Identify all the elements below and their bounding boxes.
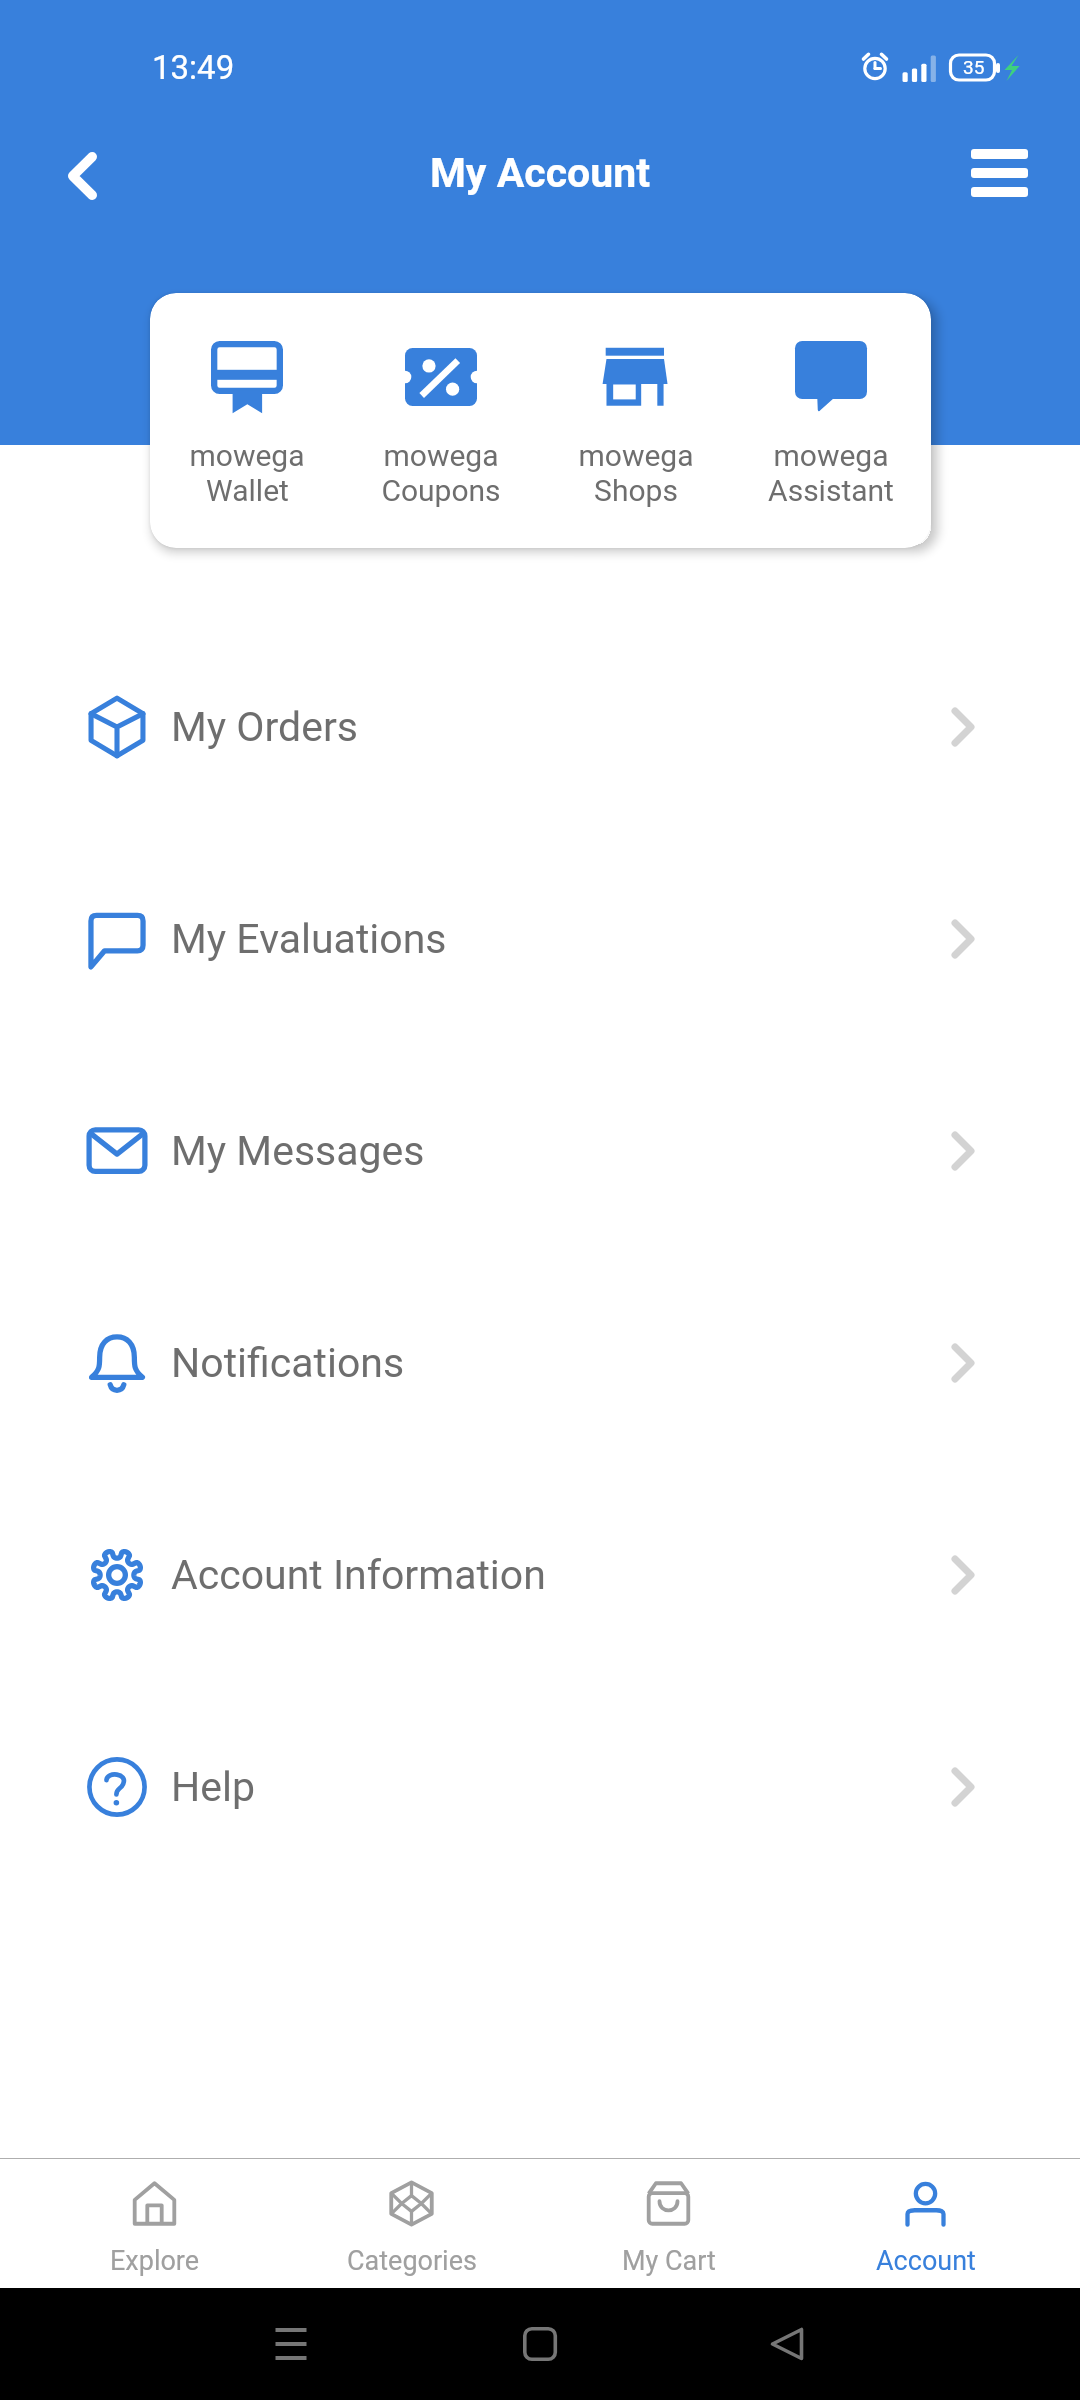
- staticText: Wallet: [206, 473, 289, 508]
- button[interactable]: Help: [0, 1681, 1080, 1893]
- staticText: 35: [963, 56, 985, 78]
- staticText: Shops: [594, 473, 678, 508]
- staticText: Explore: [110, 2245, 200, 2277]
- button[interactable]: mowega: [344, 293, 538, 548]
- button[interactable]: Notifications: [0, 1257, 1080, 1469]
- button[interactable]: Menu: [944, 118, 1054, 228]
- button[interactable]: Account Information: [0, 1469, 1080, 1681]
- button[interactable]: mowega: [150, 293, 344, 548]
- staticText: mowega: [189, 438, 305, 473]
- staticText: mowega: [383, 438, 499, 473]
- button[interactable]: Categories: [283, 2159, 540, 2288]
- staticText: mowega: [578, 438, 694, 473]
- staticText: mowega: [773, 438, 889, 473]
- staticText: Account Information: [171, 1551, 546, 1599]
- staticText: Notifications: [171, 1339, 405, 1387]
- staticText: Account: [876, 2245, 976, 2277]
- staticText: My Cart: [622, 2245, 716, 2277]
- button[interactable]: My Cart: [540, 2159, 797, 2288]
- button[interactable]: Account: [797, 2159, 1054, 2288]
- staticText: My Evaluations: [171, 915, 447, 963]
- staticText: Assistant: [768, 473, 894, 508]
- button[interactable]: mowega: [538, 293, 733, 548]
- button[interactable]: mowega: [733, 293, 928, 548]
- staticText: Help: [171, 1763, 255, 1811]
- button[interactable]: Back: [22, 116, 142, 236]
- staticText: My Orders: [171, 703, 359, 751]
- staticText: Categories: [347, 2245, 477, 2277]
- button[interactable]: My Orders: [0, 621, 1080, 833]
- button[interactable]: My Evaluations: [0, 833, 1080, 1045]
- staticText: Coupons: [381, 473, 501, 508]
- button[interactable]: Explore: [26, 2159, 283, 2288]
- staticText: 13:49: [152, 48, 235, 87]
- staticText: My Messages: [171, 1127, 425, 1175]
- button[interactable]: My Messages: [0, 1045, 1080, 1257]
- staticText: My Account: [0, 149, 1080, 197]
